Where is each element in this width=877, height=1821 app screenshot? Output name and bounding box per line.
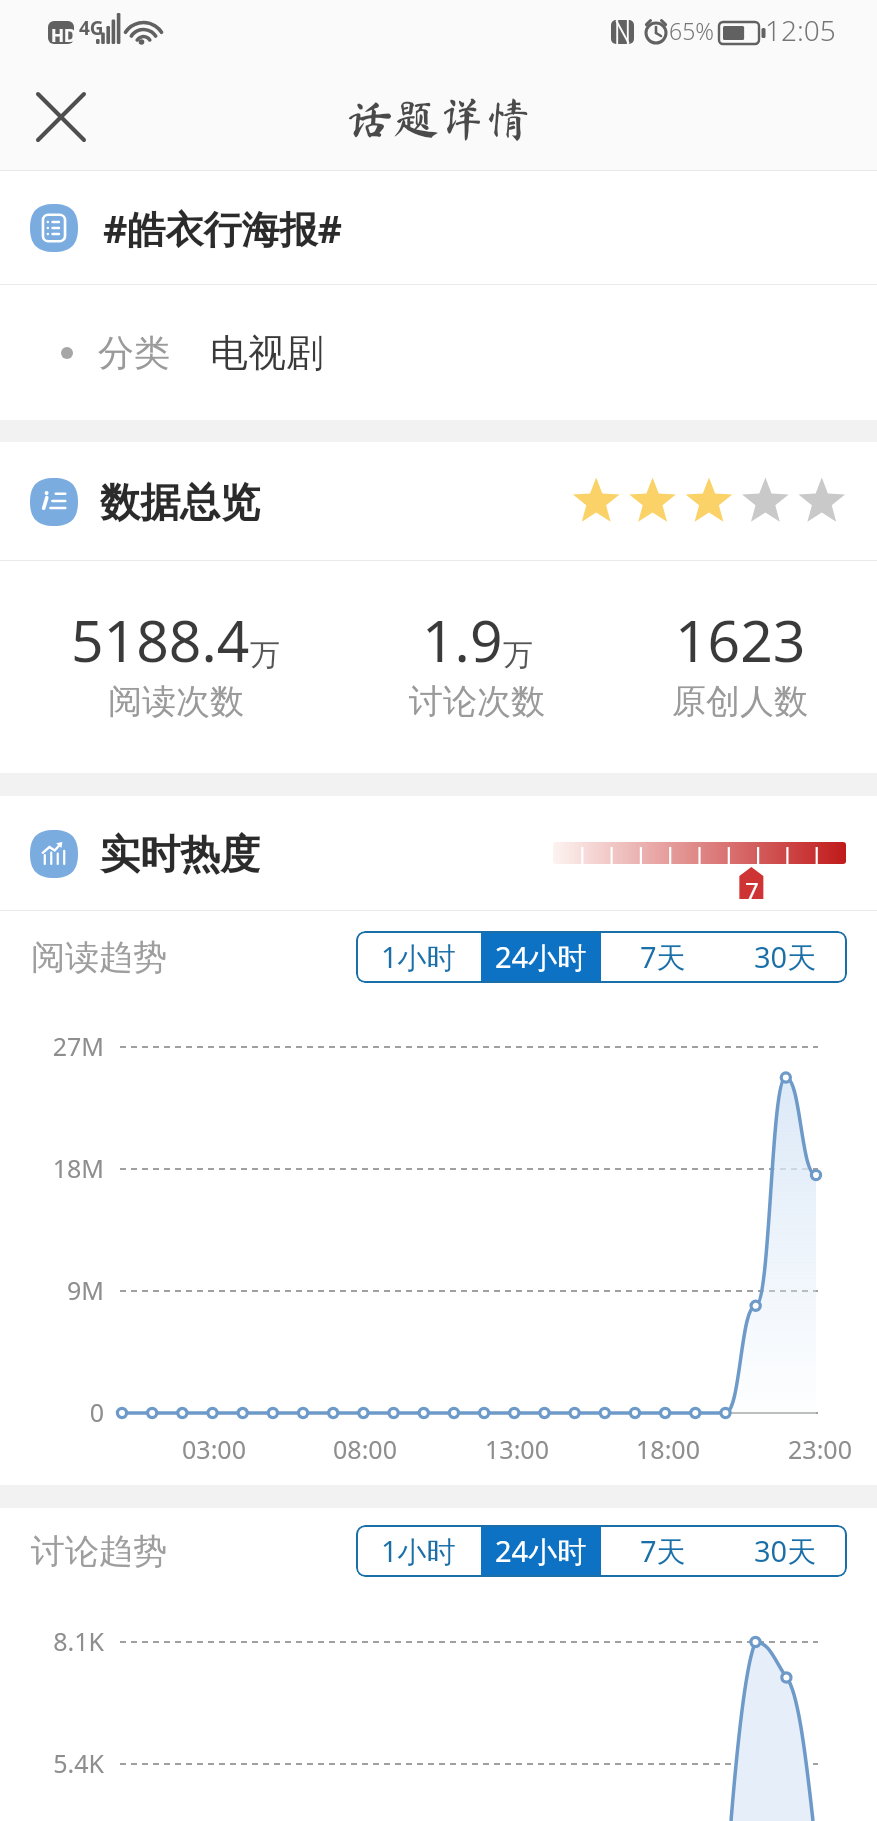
staticText: 30天 [754, 937, 817, 977]
staticText: 0 [0, 1395, 104, 1429]
staticText: 数据总览 [100, 477, 260, 527]
staticText: #皓衣行海报# [103, 202, 343, 254]
button[interactable]: 30天 [724, 931, 847, 983]
button[interactable]: 1小时 [356, 931, 481, 983]
staticText: 1.9 [422, 601, 503, 679]
staticText: 7天 [640, 1531, 686, 1571]
staticText: 27M [0, 1029, 104, 1063]
staticText: 23:00 [760, 1432, 877, 1466]
staticText: 24小时 [495, 937, 587, 977]
staticText: 实时热度 [100, 829, 260, 879]
staticText: 30天 [754, 1531, 817, 1571]
staticText: 18M [0, 1151, 104, 1185]
staticText: 讨论次数 [409, 680, 545, 723]
button[interactable]: #皓衣行海报# [0, 171, 877, 285]
staticText: 13:00 [457, 1432, 577, 1466]
staticText: 8.1K [0, 1624, 104, 1658]
staticText: 4G [79, 15, 104, 41]
staticText: 1小时 [381, 1531, 456, 1571]
button[interactable]: 7天 [601, 931, 724, 983]
staticText: 讨论趋势 [31, 1530, 167, 1573]
staticText: 分类 [98, 330, 170, 375]
staticText: 08:00 [305, 1432, 425, 1466]
staticText: 5188.4 [71, 601, 250, 679]
staticText: 12:05 [765, 11, 836, 49]
staticText: 阅读次数 [108, 680, 244, 723]
staticText: 5.4K [0, 1746, 104, 1780]
staticText: 1小时 [381, 937, 456, 977]
staticText: 7天 [640, 937, 686, 977]
staticText: 9M [0, 1273, 104, 1307]
button[interactable]: 24小时 [481, 1525, 601, 1577]
staticText: 万 [250, 636, 280, 674]
staticText: 话题详情 [347, 96, 531, 142]
staticText: 65% [669, 15, 714, 46]
button[interactable]: 24小时 [481, 931, 601, 983]
staticText: 万 [503, 636, 533, 674]
staticText: 03:00 [154, 1432, 274, 1466]
staticText: 原创人数 [672, 680, 808, 723]
button[interactable]: 30天 [724, 1525, 847, 1577]
button[interactable]: 7天 [601, 1525, 724, 1577]
staticText: 电视剧 [210, 329, 324, 377]
staticText: 1623 [675, 601, 806, 679]
staticText: 阅读趋势 [31, 936, 167, 979]
button[interactable]: 分类 [0, 285, 877, 420]
button[interactable]: Close [33, 89, 89, 145]
staticText: 24小时 [495, 1531, 587, 1571]
staticText: 18:00 [608, 1432, 728, 1466]
button[interactable]: 1小时 [356, 1525, 481, 1577]
staticText: HD [51, 24, 77, 47]
staticText: 7 [745, 874, 759, 907]
